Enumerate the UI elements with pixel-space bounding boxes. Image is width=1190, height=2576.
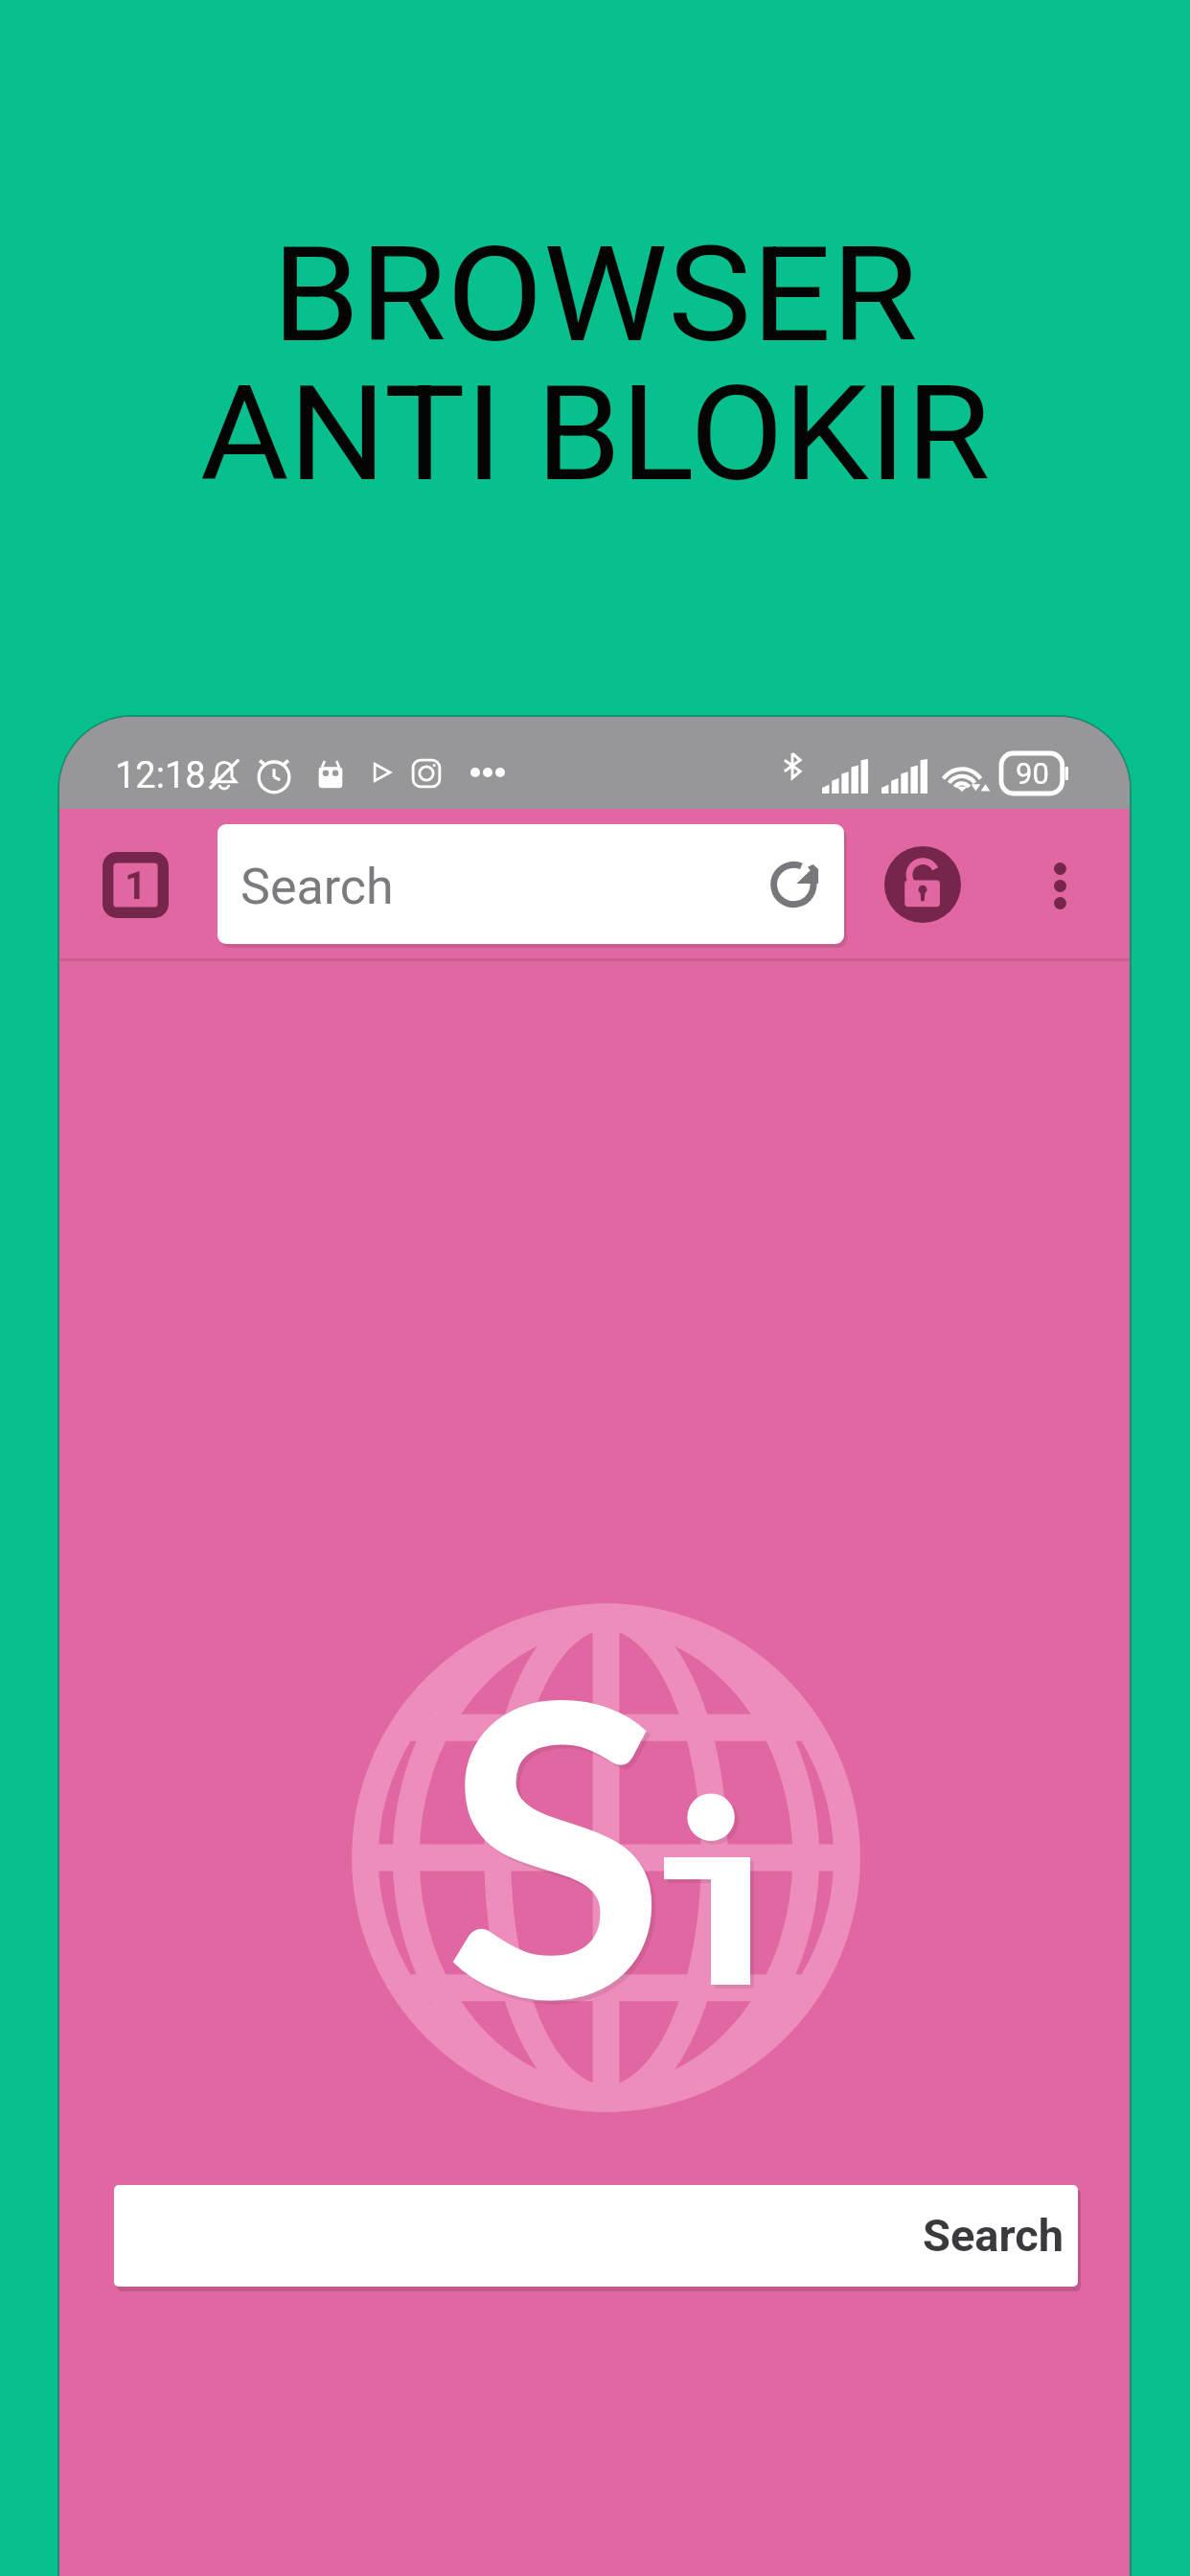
staticText: ANTI BLOKIR <box>200 357 990 511</box>
staticText: Search <box>240 858 394 916</box>
button[interactable]: More options <box>1021 847 1098 924</box>
staticText: BROWSER <box>272 218 918 372</box>
staticText: 1 <box>125 863 147 908</box>
staticText: 90 <box>1016 756 1049 791</box>
staticText: S <box>444 1597 667 2084</box>
button[interactable]: Unlock site <box>884 846 961 923</box>
button[interactable]: Search <box>217 824 844 944</box>
staticText: Search <box>923 2209 1064 2262</box>
button[interactable]: Search <box>114 2185 1078 2287</box>
button[interactable]: Tabs <box>103 852 169 918</box>
staticText: S <box>447 1600 671 2088</box>
staticText: 12:18 <box>115 754 206 797</box>
